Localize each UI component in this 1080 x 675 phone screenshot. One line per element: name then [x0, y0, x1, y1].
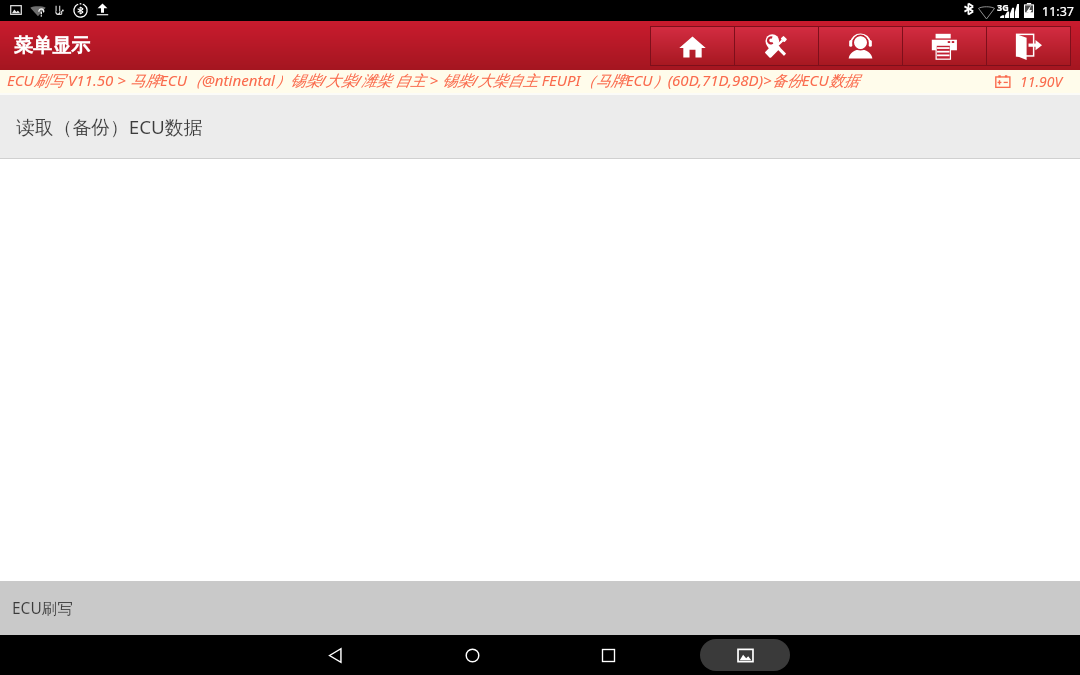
staticText: 菜单显示 — [14, 34, 90, 58]
staticText: 11:37 — [1042, 3, 1074, 20]
staticText: 11.90V — [1020, 72, 1063, 91]
button[interactable]: Diagnostics — [735, 27, 818, 65]
staticText: 3G — [997, 1, 1009, 13]
button[interactable]: Support — [819, 27, 902, 65]
button[interactable]: Screenshot — [700, 639, 790, 671]
button[interactable]: Print — [903, 27, 986, 65]
staticText: ECU刷写 — [12, 597, 73, 618]
button[interactable]: Back — [300, 635, 370, 675]
staticText: 读取（备份）ECU数据 — [16, 114, 203, 140]
button[interactable]: Recents — [573, 635, 643, 675]
staticText: ECU刷写 V11.50 > 马牌ECU（@ntinental）锡柴/大柴/潍柴… — [7, 70, 859, 91]
button[interactable]: Home — [437, 635, 507, 675]
button[interactable]: Exit — [987, 27, 1070, 65]
button[interactable]: Home — [651, 27, 734, 65]
